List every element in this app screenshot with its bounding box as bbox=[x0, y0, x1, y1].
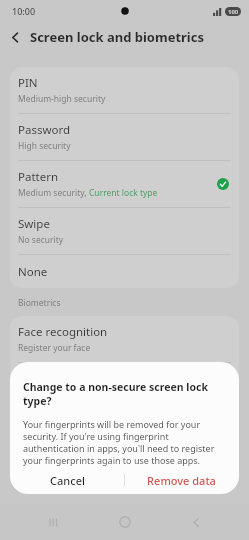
staticText: Swipe bbox=[18, 216, 50, 232]
staticText: Your fingerprints will be removed for yo… bbox=[23, 418, 226, 466]
staticText: Remove data bbox=[147, 473, 216, 488]
button[interactable]: None bbox=[10, 255, 239, 288]
staticText: Medium-high security bbox=[18, 93, 106, 105]
staticText: Pattern bbox=[18, 169, 59, 185]
button[interactable]: Cancel bbox=[10, 466, 124, 494]
staticText: Current lock type bbox=[89, 187, 158, 199]
staticText: 100 bbox=[228, 8, 239, 16]
staticText: PIN bbox=[18, 75, 38, 91]
staticText: Biometrics bbox=[18, 297, 61, 309]
button[interactable]: Home bbox=[107, 504, 143, 540]
staticText: Register fingerprints bbox=[18, 389, 101, 401]
button[interactable]: PIN bbox=[10, 67, 239, 113]
staticText: Password bbox=[18, 122, 71, 138]
staticText: No security bbox=[18, 234, 64, 246]
button[interactable]: Password bbox=[10, 114, 239, 160]
button[interactable]: Back bbox=[0, 22, 30, 52]
button[interactable]: Face recognition bbox=[10, 316, 239, 362]
staticText: Register your face bbox=[18, 342, 91, 354]
button[interactable]: Fingerprints bbox=[10, 363, 239, 409]
staticText: High security bbox=[18, 140, 71, 152]
button[interactable]: Swipe bbox=[10, 208, 239, 254]
staticText: Face recognition bbox=[18, 324, 108, 340]
staticText: Screen lock and biometrics bbox=[30, 28, 204, 46]
button[interactable]: Pattern bbox=[10, 161, 239, 207]
staticText: None bbox=[18, 264, 48, 280]
staticText: Change to a non-secure screen lock type? bbox=[23, 380, 226, 408]
staticText: Cancel bbox=[50, 473, 85, 488]
staticText: 10:00 bbox=[12, 5, 36, 17]
staticText: Fingerprints bbox=[18, 371, 84, 387]
button[interactable]: Remove data bbox=[124, 466, 239, 494]
staticText: Medium security, bbox=[18, 187, 89, 199]
